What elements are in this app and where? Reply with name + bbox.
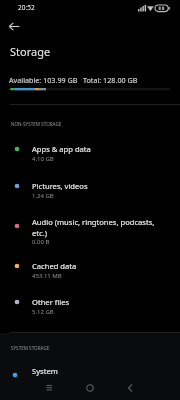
staticText: Pictures, videos [32,181,88,191]
staticText: Other files [32,297,70,307]
staticText: NON-SYSTEM STORAGE [11,121,62,127]
staticText: Cached data [32,261,77,271]
staticText: 20:52 [18,3,35,12]
staticText: etc.) [32,228,47,238]
staticText: Available: 103.99 GB Total: 128.00 GB [9,75,138,85]
staticText: 453.11 MB [32,272,62,280]
staticText: SYSTEM STORAGE [11,345,50,351]
staticText: 4.10 GB [32,155,54,163]
staticText: 0.00 B [32,238,50,246]
staticText: 1.24 GB [32,192,54,200]
staticText: Storage [10,44,51,59]
staticText: Apps & app data [32,144,91,154]
staticText: 5.12 GB [32,308,54,316]
staticText: System [32,366,58,376]
staticText: Audio (music, ringtones, podcasts, [32,217,155,227]
